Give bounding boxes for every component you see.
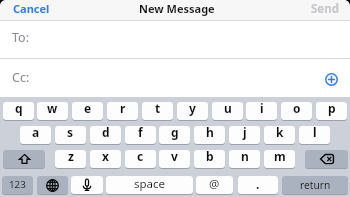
button[interactable]: 123 bbox=[2, 176, 33, 194]
staticText: return bbox=[300, 178, 331, 192]
button[interactable]: p bbox=[316, 102, 347, 120]
staticText: m bbox=[274, 150, 286, 164]
staticText: 123 bbox=[9, 178, 26, 191]
button[interactable]: Add contact bbox=[322, 70, 340, 88]
staticText: i bbox=[260, 102, 264, 116]
button[interactable]: l bbox=[299, 126, 330, 144]
button[interactable]: x bbox=[90, 150, 121, 168]
button[interactable]: w bbox=[37, 102, 68, 120]
button[interactable]: z bbox=[55, 150, 86, 168]
staticText: x bbox=[102, 150, 109, 164]
staticText: Send bbox=[311, 1, 339, 17]
button[interactable]: @ bbox=[196, 176, 233, 194]
staticText: . bbox=[256, 176, 260, 192]
staticText: space bbox=[134, 176, 166, 192]
staticText: Cancel bbox=[13, 1, 50, 16]
button[interactable]: To: bbox=[0, 21, 350, 59]
button[interactable]: o bbox=[281, 102, 312, 120]
staticText: u bbox=[224, 102, 232, 116]
staticText: l bbox=[313, 126, 317, 140]
button[interactable]: e bbox=[72, 102, 103, 120]
button[interactable]: Send bbox=[311, 0, 350, 21]
button[interactable]: h bbox=[194, 126, 225, 144]
button[interactable]: k bbox=[264, 126, 295, 144]
staticText: a bbox=[32, 126, 40, 140]
button[interactable]: g bbox=[159, 126, 190, 144]
button[interactable]: space bbox=[106, 176, 193, 194]
staticText: p bbox=[328, 102, 336, 116]
staticText: w bbox=[47, 102, 58, 116]
button[interactable]: . bbox=[238, 176, 278, 194]
staticText: z bbox=[68, 150, 74, 164]
button[interactable]: Cc: bbox=[0, 58, 350, 97]
button[interactable]: Dictation bbox=[71, 176, 103, 194]
button[interactable]: f bbox=[125, 126, 156, 144]
staticText: q bbox=[15, 102, 23, 116]
staticText: b bbox=[206, 150, 214, 164]
button[interactable]: q bbox=[3, 102, 34, 120]
staticText: h bbox=[206, 126, 214, 140]
button[interactable]: a bbox=[20, 126, 51, 144]
button[interactable]: y bbox=[177, 102, 208, 120]
staticText: f bbox=[138, 126, 143, 140]
button[interactable]: return bbox=[282, 176, 348, 194]
staticText: New Message bbox=[139, 1, 215, 16]
staticText: n bbox=[241, 150, 249, 164]
staticText: Cc: bbox=[12, 69, 30, 86]
button[interactable]: Switch keyboard bbox=[37, 176, 68, 194]
button[interactable]: u bbox=[212, 102, 243, 120]
button[interactable]: b bbox=[194, 150, 225, 168]
staticText: k bbox=[276, 126, 284, 140]
staticText: o bbox=[293, 102, 301, 116]
button[interactable]: Backspace bbox=[305, 150, 348, 168]
button[interactable]: c bbox=[125, 150, 156, 168]
button[interactable]: r bbox=[107, 102, 138, 120]
staticText: To: bbox=[12, 29, 29, 46]
staticText: t bbox=[155, 102, 161, 116]
button[interactable]: d bbox=[90, 126, 121, 144]
button[interactable]: i bbox=[246, 102, 277, 120]
button[interactable]: Cancel bbox=[0, 0, 70, 21]
staticText: v bbox=[171, 150, 178, 164]
button[interactable]: m bbox=[264, 150, 295, 168]
staticText: y bbox=[189, 102, 196, 116]
button[interactable]: t bbox=[142, 102, 173, 120]
button[interactable]: Shift bbox=[3, 150, 45, 168]
button[interactable]: j bbox=[229, 126, 260, 144]
staticText: @ bbox=[209, 176, 220, 192]
button[interactable]: n bbox=[229, 150, 260, 168]
staticText: j bbox=[243, 126, 247, 140]
button[interactable]: v bbox=[159, 150, 190, 168]
staticText: r bbox=[120, 102, 126, 116]
staticText: c bbox=[137, 150, 144, 164]
staticText: g bbox=[171, 126, 179, 140]
staticText: d bbox=[102, 126, 110, 140]
staticText: s bbox=[67, 126, 74, 140]
staticText: e bbox=[84, 102, 92, 116]
button[interactable]: s bbox=[55, 126, 86, 144]
